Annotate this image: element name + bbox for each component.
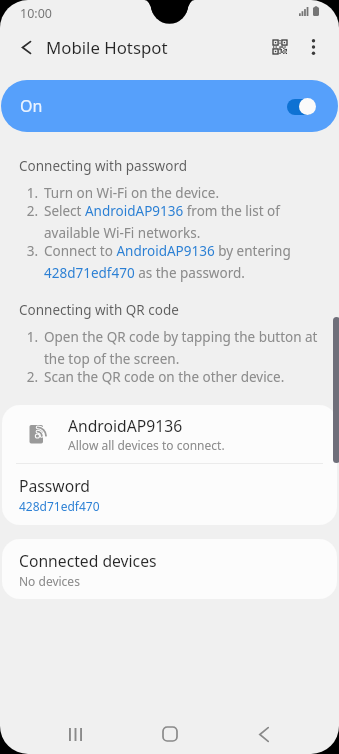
button[interactable]: Back bbox=[4, 25, 48, 69]
staticText: 1. bbox=[24, 328, 38, 346]
staticText: Connecting with QR code bbox=[19, 301, 179, 319]
button[interactable]: Back bbox=[240, 710, 288, 754]
button[interactable]: Home bbox=[146, 710, 194, 754]
button[interactable]: AndroidAP9136 bbox=[2, 405, 337, 463]
staticText: Password bbox=[19, 475, 90, 496]
staticText: Allow all devices to connect. bbox=[68, 437, 225, 453]
staticText: Open the QR code by tapping the button a… bbox=[44, 328, 325, 368]
staticText: 1. bbox=[24, 184, 38, 202]
staticText: Connected devices bbox=[19, 550, 157, 571]
staticText: Mobile Hotspot bbox=[46, 36, 168, 59]
button[interactable]: Connected devices bbox=[2, 539, 337, 599]
button[interactable]: QR code bbox=[258, 25, 302, 69]
staticText: Connect to AndroidAP9136 by entering 428… bbox=[44, 242, 325, 282]
staticText: On bbox=[20, 95, 43, 117]
staticText: No devices bbox=[19, 573, 80, 589]
staticText: 10:00 bbox=[20, 5, 52, 22]
button[interactable]: Password bbox=[2, 464, 337, 525]
button[interactable]: On bbox=[1, 80, 338, 132]
staticText: Select AndroidAP9136 from the list of av… bbox=[44, 202, 325, 242]
staticText: 2. bbox=[24, 202, 38, 220]
staticText: AndroidAP9136 bbox=[68, 415, 183, 436]
staticText: Turn on Wi-Fi on the device. bbox=[44, 184, 220, 202]
staticText: 428d71edf470 bbox=[19, 498, 100, 514]
staticText: 2. bbox=[24, 368, 38, 386]
staticText: Scan the QR code on the other device. bbox=[44, 368, 285, 386]
staticText: Connecting with password bbox=[19, 157, 188, 175]
button[interactable]: More options bbox=[293, 27, 333, 67]
staticText: 3. bbox=[24, 242, 38, 260]
button[interactable]: Recents bbox=[51, 710, 99, 754]
